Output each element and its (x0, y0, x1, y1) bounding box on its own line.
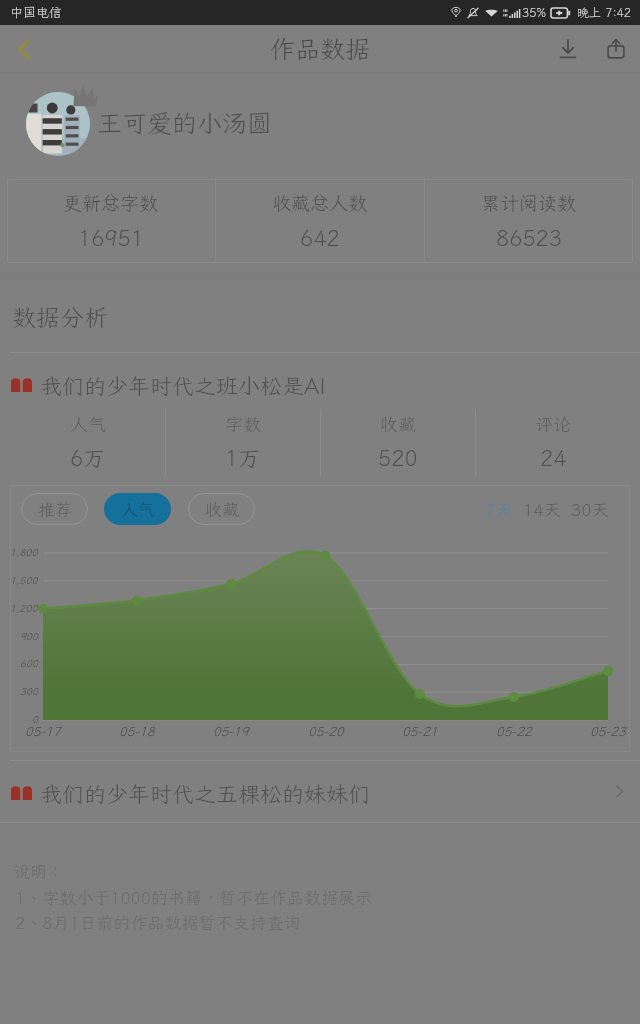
staticText: 2、8月1日前的作品数据暂不支持查询 (15, 911, 301, 933)
staticText: 王可爱的小汤圆 (97, 106, 273, 139)
staticText: 24 (540, 443, 567, 472)
button[interactable]: 收藏 (188, 493, 255, 525)
staticText: 人气 (121, 498, 155, 520)
staticText: 05-21 (402, 723, 438, 740)
staticText: 中国电信 (10, 4, 63, 21)
staticText: 05-23 (590, 723, 626, 740)
staticText: 作品数据 (270, 32, 371, 65)
button[interactable]: 我们的少年时代之班小松是AI (0, 362, 640, 406)
staticText: 05-17 (25, 723, 61, 740)
staticText: 字数 (225, 412, 261, 436)
staticText: 642 (300, 223, 340, 252)
button[interactable]: Back (0, 25, 48, 72)
button[interactable]: 7天 (485, 498, 513, 520)
staticText: 520 (378, 443, 418, 472)
staticText: 16951 (78, 223, 145, 252)
staticText: 收藏 (380, 412, 416, 436)
button[interactable]: 王可爱的小汤圆 (0, 73, 640, 169)
button[interactable]: Download (544, 25, 592, 72)
staticText: 更新总字数 (63, 190, 159, 215)
staticText: 1,500 (10, 574, 38, 587)
staticText: 我们的少年时代之班小松是AI (40, 371, 326, 400)
staticText: 300 (20, 685, 38, 698)
staticText: 05-22 (496, 723, 532, 740)
staticText: 1万 (225, 443, 261, 472)
button[interactable]: 推荐 (21, 493, 88, 525)
staticText: 人气 (70, 412, 106, 436)
staticText: 我们的少年时代之五棵松的妹妹们 (40, 779, 371, 808)
staticText: 86523 (496, 223, 563, 252)
staticText: 05-19 (213, 723, 249, 740)
button[interactable]: 我们的少年时代之五棵松的妹妹们 (0, 763, 640, 821)
staticText: 900 (20, 630, 38, 643)
staticText: 累计阅读数 (481, 190, 577, 215)
staticText: 35% (522, 5, 547, 21)
button[interactable]: 30天 (571, 498, 609, 520)
button[interactable]: Share (592, 25, 640, 72)
staticText: 收藏总人数 (272, 190, 368, 215)
staticText: 推荐 (38, 498, 72, 520)
button[interactable]: 人气 (104, 493, 171, 525)
staticText: 评论 (535, 412, 571, 436)
staticText: 05-18 (119, 723, 155, 740)
button[interactable]: 14天 (523, 498, 561, 520)
staticText: 1,200 (10, 602, 38, 615)
staticText: 晚上 7:42 (577, 5, 632, 21)
staticText: 05-20 (308, 723, 344, 740)
staticText: 1、字数小于1000的书籍，暂不在作品数据展示 (15, 886, 372, 908)
staticText: 收藏 (205, 498, 239, 520)
staticText: 说明： (13, 860, 64, 882)
staticText: 6万 (70, 443, 106, 472)
staticText: 1,800 (10, 546, 38, 559)
staticText: 600 (20, 657, 38, 670)
staticText: 数据分析 (12, 301, 108, 333)
staticText: 0 (32, 713, 38, 726)
